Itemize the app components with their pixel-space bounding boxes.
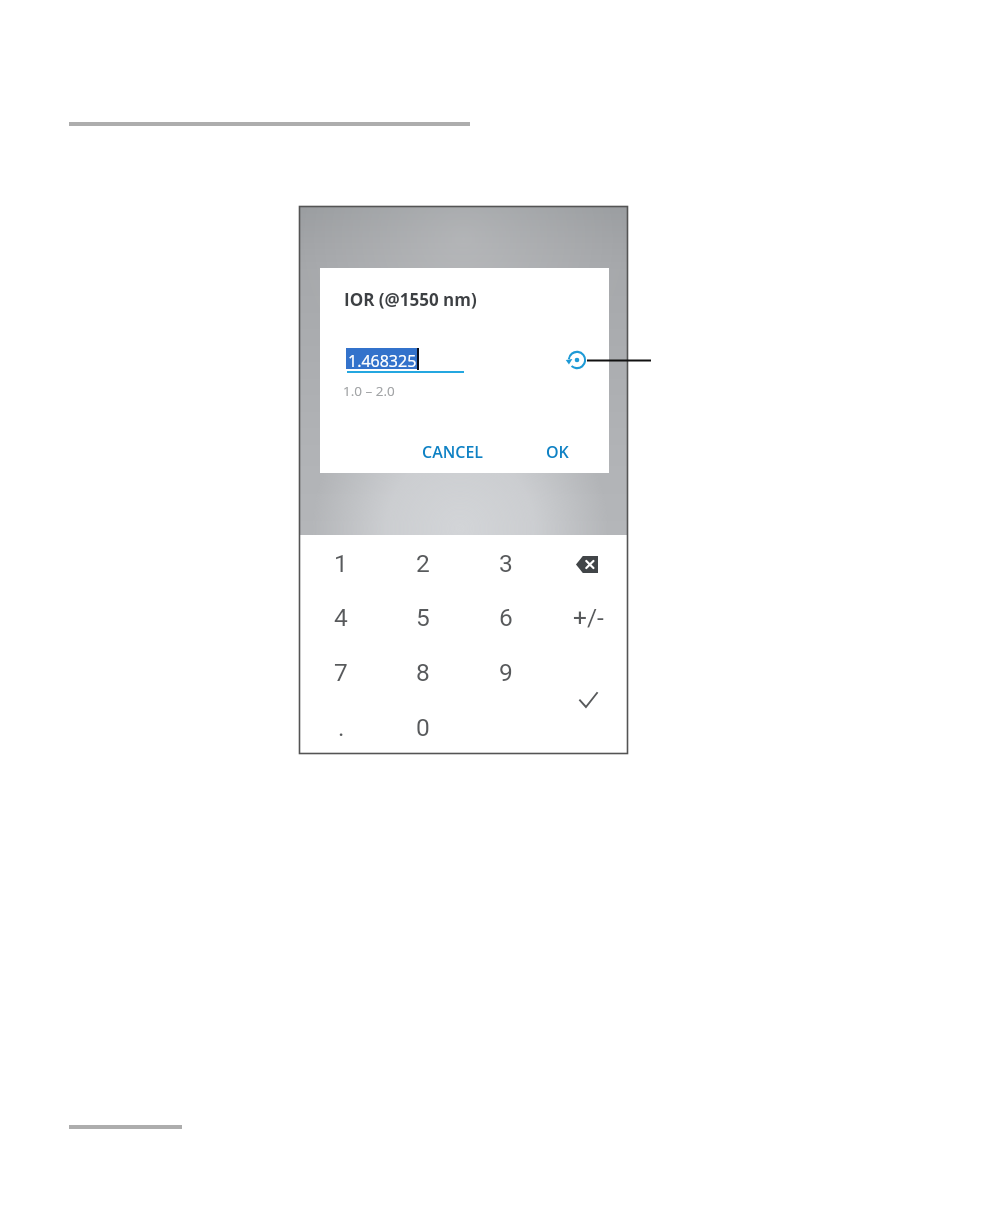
staticText: OK	[546, 441, 569, 463]
staticText: CANCEL	[422, 441, 483, 463]
button[interactable]: 1	[320, 545, 362, 581]
button[interactable]: 5	[402, 599, 444, 635]
button[interactable]: +/-	[562, 599, 614, 635]
staticText: .	[338, 713, 345, 742]
button[interactable]: .	[320, 709, 362, 745]
button[interactable]: 2	[402, 545, 444, 581]
button[interactable]: 0	[402, 709, 444, 745]
staticText: 4	[334, 603, 348, 632]
button[interactable]: 3	[485, 545, 527, 581]
button[interactable]: 9	[485, 654, 527, 690]
button[interactable]: 4	[320, 599, 362, 635]
button[interactable]: Confirm	[567, 682, 609, 718]
button[interactable]: 7	[320, 654, 362, 690]
staticText: 1.468325	[348, 350, 417, 372]
staticText: 8	[416, 658, 430, 687]
staticText: 5	[416, 603, 430, 632]
staticText: 6	[499, 603, 513, 632]
button[interactable]: CANCEL	[412, 433, 493, 471]
button[interactable]: 8	[402, 654, 444, 690]
staticText: 7	[334, 658, 348, 687]
staticText: 1.0 – 2.0	[343, 382, 395, 400]
button[interactable]: Reset to default value	[567, 350, 587, 370]
staticText: IOR (@1550 nm)	[344, 288, 477, 311]
button[interactable]: 6	[485, 599, 527, 635]
staticText: 0	[416, 713, 430, 742]
staticText: 1	[334, 549, 348, 578]
staticText: 2	[416, 549, 430, 578]
button[interactable]: 1.468325	[346, 346, 464, 373]
button[interactable]: OK	[536, 433, 579, 471]
staticText: +/-	[573, 603, 604, 632]
button[interactable]: Backspace	[567, 545, 609, 581]
staticText: 3	[499, 549, 513, 578]
staticText: 9	[499, 658, 513, 687]
